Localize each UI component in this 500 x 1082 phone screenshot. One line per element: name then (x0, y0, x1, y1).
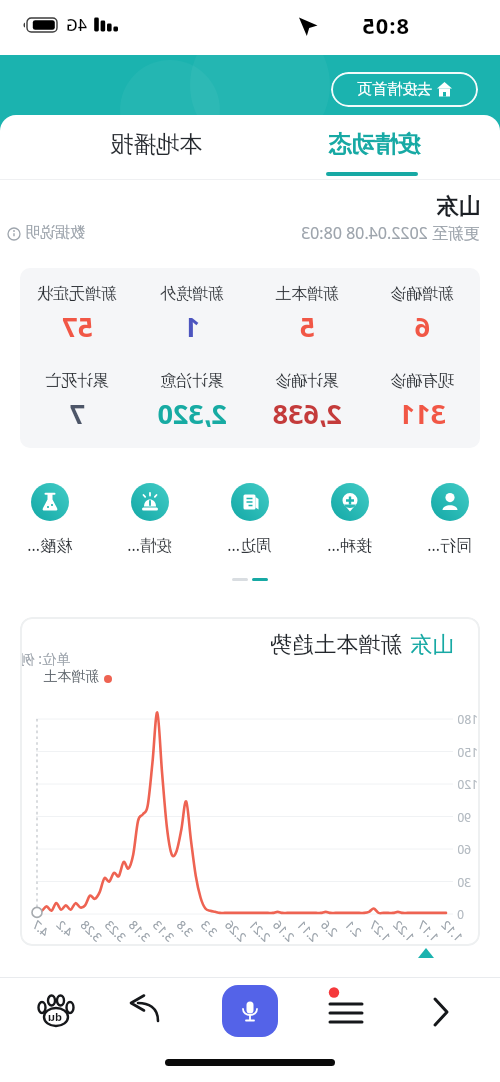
button[interactable]: 本地播报 (110, 130, 202, 159)
button[interactable]: du (36, 993, 76, 1031)
staticText: 7 (69, 395, 85, 432)
staticText: 4G (66, 14, 87, 36)
staticText: du (47, 1009, 62, 1024)
button[interactable]: 核酸... (0, 483, 100, 556)
staticText: 接种... (327, 534, 372, 556)
staticText: 疫情动态 (328, 130, 420, 159)
staticText: 1 (184, 308, 200, 345)
staticText: 现有确诊 (390, 371, 454, 391)
button[interactable]: 累计治愈 (135, 371, 250, 432)
button[interactable]: 累计死亡 (20, 371, 135, 432)
staticText: 累计死亡 (45, 371, 109, 391)
button[interactable]: 数据说明 (7, 223, 85, 242)
staticText: 累计治愈 (160, 371, 224, 391)
staticText: 周边... (227, 534, 272, 556)
staticText: 去疫情首页 (357, 80, 432, 99)
staticText: 5 (299, 308, 315, 345)
button[interactable]: 新增确诊 (365, 284, 480, 345)
button[interactable]: 累计确诊 (250, 371, 365, 432)
button[interactable]: 新增境外 (135, 284, 250, 345)
staticText: 更新至 2022.04.08 08:03 (300, 222, 480, 244)
staticText: 本地播报 (110, 130, 202, 159)
button[interactable] (124, 993, 164, 1029)
button[interactable]: 疫情动态 (328, 130, 420, 159)
staticText: 新增境外 (160, 284, 224, 304)
staticText: 57 (62, 308, 93, 345)
button[interactable]: 新增无症状 (20, 284, 135, 345)
staticText: 同行... (427, 534, 472, 556)
staticText: 数据说明 (25, 223, 85, 242)
staticText: 山东 (410, 631, 454, 659)
button[interactable] (424, 995, 456, 1029)
staticText: 新增确诊 (390, 284, 454, 304)
staticText: 单位: 例 (20, 649, 70, 668)
staticText: 新增无症状 (37, 284, 117, 304)
staticText: 疫情... (127, 534, 172, 556)
staticText: 累计确诊 (275, 371, 339, 391)
staticText: 新增本土 (275, 284, 339, 304)
button[interactable] (222, 985, 278, 1037)
button[interactable]: 去疫情首页 (331, 72, 478, 107)
button[interactable]: 接种... (300, 483, 400, 556)
staticText: 6 (414, 308, 430, 345)
staticText: 2,320 (157, 395, 227, 432)
staticText: 山东 (436, 193, 480, 221)
staticText: 8:05 (361, 10, 409, 40)
button[interactable]: 同行... (400, 483, 500, 556)
staticText: 核酸... (27, 534, 72, 556)
staticText: 2,638 (272, 395, 342, 432)
button[interactable] (328, 990, 364, 1030)
staticText: 311 (399, 395, 446, 432)
staticText: 新增本土 (43, 668, 99, 686)
button[interactable]: 疫情... (100, 483, 200, 556)
staticText: 新增本土趋势 (270, 631, 402, 659)
button[interactable]: 周边... (200, 483, 300, 556)
button[interactable]: 新增本土 (250, 284, 365, 345)
button[interactable]: 现有确诊 (365, 371, 480, 432)
